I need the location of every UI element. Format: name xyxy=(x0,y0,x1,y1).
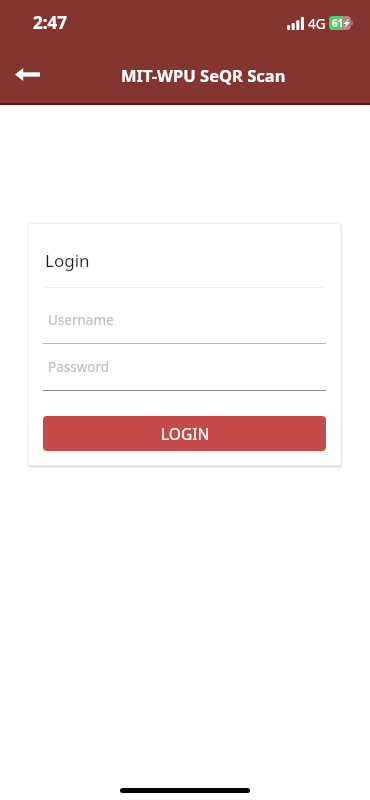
staticText: LOGIN xyxy=(161,423,210,444)
button[interactable]: Username xyxy=(43,310,326,344)
staticText: Password xyxy=(48,358,110,376)
staticText: Username xyxy=(48,311,114,329)
button[interactable]: LOGIN xyxy=(43,416,326,451)
button[interactable]: Back xyxy=(4,53,50,99)
staticText: 2:47 xyxy=(33,11,67,34)
staticText: MIT-WPU SeQR Scan xyxy=(121,64,286,86)
staticText: 61 xyxy=(332,16,344,30)
button[interactable]: Password xyxy=(43,357,326,391)
staticText: 4G xyxy=(308,15,326,33)
staticText: Login xyxy=(45,249,90,272)
